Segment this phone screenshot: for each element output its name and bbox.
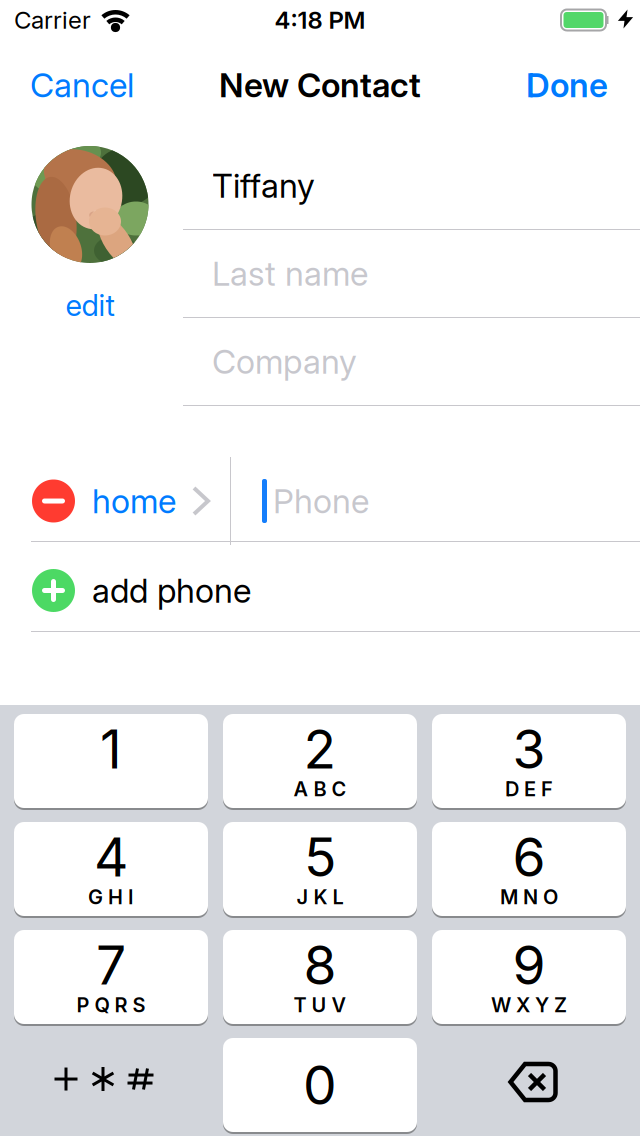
staticText: edit [65,288,114,323]
staticText: Carrier [14,6,91,34]
staticText: 2 [303,717,336,780]
button[interactable]: 3 [432,714,626,808]
button[interactable]: 2 [223,714,417,808]
staticText: 8 [303,933,336,996]
staticText: 4:18 PM [274,6,365,34]
button[interactable]: add phone [0,542,640,631]
button[interactable]: Done [526,65,640,105]
button[interactable]: 9 [432,930,626,1024]
staticText: Tiffany [212,166,315,205]
staticText: 6 [512,825,545,888]
staticText: 1 [100,717,122,780]
button[interactable]: Add photo [31,146,148,263]
staticText: G H I [88,885,134,909]
button[interactable]: 7 [14,930,208,1024]
staticText: M N O [500,885,558,909]
staticText: Company [212,342,357,381]
staticText: 9 [512,933,545,996]
staticText: Last name [212,254,368,293]
staticText: 3 [512,717,545,780]
staticText: 4 [94,825,128,888]
staticText: Phone [273,481,369,521]
staticText: T U V [293,993,346,1017]
button[interactable]: More symbols [14,1038,208,1132]
button[interactable]: Tiffany [180,142,640,229]
staticText: home [92,481,176,521]
button[interactable]: Remove phone [0,479,75,522]
staticText: P Q R S [76,993,145,1017]
button[interactable]: Company [180,318,640,405]
button[interactable]: 5 [223,822,417,916]
staticText: A B C [293,777,346,801]
button[interactable]: Phone [231,479,640,523]
staticText: D E F [505,777,553,801]
staticText: add phone [92,571,251,610]
button[interactable]: 6 [432,822,626,916]
staticText: Done [526,65,608,105]
button[interactable]: Cancel [0,65,134,105]
button[interactable]: 8 [223,930,417,1024]
staticText: J K L [296,885,343,909]
button[interactable]: 1 [14,714,208,808]
staticText: 0 [303,1053,337,1116]
button[interactable]: Last name [180,230,640,317]
staticText: W X Y Z [491,993,567,1017]
staticText: 7 [96,933,126,996]
button[interactable]: 0 [223,1038,417,1132]
staticText: 5 [304,825,336,888]
button[interactable]: edit [65,288,114,323]
button[interactable]: home [75,481,208,521]
button[interactable]: 4 [14,822,208,916]
staticText: New Contact [219,65,421,105]
button[interactable]: Delete [432,1038,626,1132]
staticText: Cancel [30,65,134,105]
